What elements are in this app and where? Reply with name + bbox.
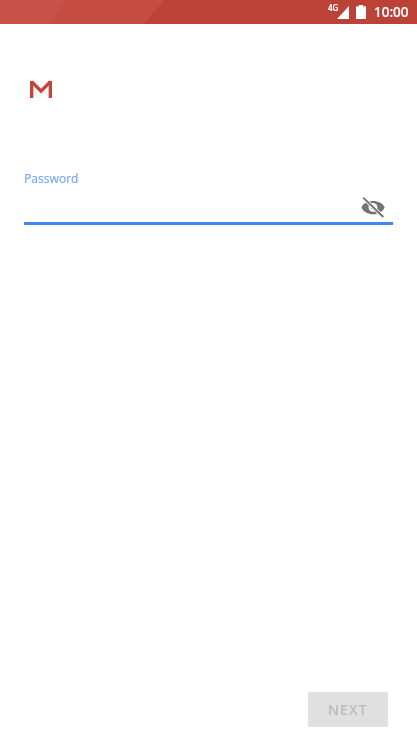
button[interactable]: Gmail bbox=[30, 81, 52, 98]
button[interactable]: Password bbox=[24, 170, 79, 186]
button[interactable]: NEXT bbox=[308, 692, 388, 727]
button[interactable]: Password field bbox=[24, 190, 354, 224]
staticText: 10:00 bbox=[374, 3, 409, 21]
staticText: NEXT bbox=[328, 700, 368, 719]
staticText: Password bbox=[24, 170, 79, 186]
button[interactable]: Show password bbox=[358, 194, 388, 220]
staticText: 4G bbox=[328, 2, 339, 13]
